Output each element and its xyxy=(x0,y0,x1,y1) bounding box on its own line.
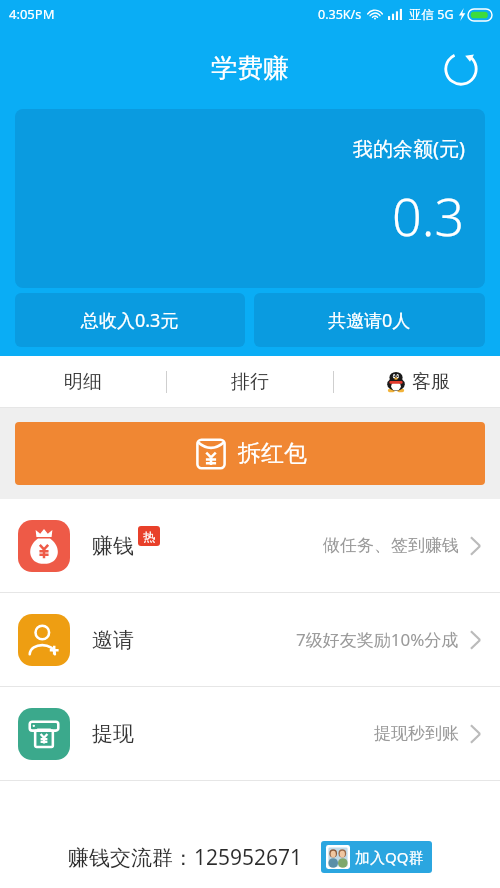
button[interactable]: 客服 xyxy=(334,356,500,408)
button[interactable]: 明细 xyxy=(0,356,166,408)
button[interactable]: 共邀请0人 xyxy=(254,293,485,347)
staticText: 邀请 xyxy=(92,627,134,653)
staticText: 排行 xyxy=(231,370,269,394)
staticText: 亚信 5G xyxy=(409,6,454,23)
staticText: 我的余额(元) xyxy=(353,135,465,162)
staticText: 赚钱交流群：125952671 xyxy=(68,843,303,872)
staticText: 做任务、签到赚钱 xyxy=(323,535,459,556)
staticText: 提现秒到账 xyxy=(374,723,459,744)
staticText: 客服 xyxy=(412,370,450,394)
button[interactable]: Refresh xyxy=(438,46,484,92)
staticText: 0.3 xyxy=(392,180,465,251)
staticText: 热 xyxy=(143,529,155,544)
staticText: 共邀请0人 xyxy=(328,308,411,333)
button[interactable]: 总收入0.3元 xyxy=(15,293,245,347)
staticText: 赚钱 xyxy=(92,533,134,559)
staticText: 总收入0.3元 xyxy=(81,308,179,333)
staticText: 0.35K/s xyxy=(318,6,362,23)
button[interactable]: 加入QQ群 xyxy=(321,841,432,873)
staticText: 学费赚 xyxy=(211,52,289,85)
button[interactable]: 邀请 xyxy=(0,593,500,686)
staticText: 明细 xyxy=(64,370,102,394)
button[interactable]: 我的余额(元) xyxy=(15,109,485,288)
staticText: 提现 xyxy=(92,721,134,747)
button[interactable]: 提现 xyxy=(0,687,500,780)
button[interactable]: 赚钱 xyxy=(0,499,500,592)
staticText: 拆红包 xyxy=(238,439,307,468)
staticText: 7级好友奖励10%分成 xyxy=(296,628,459,651)
staticText: 4:05PM xyxy=(9,5,55,23)
staticText: 加入QQ群 xyxy=(355,847,424,867)
button[interactable]: 排行 xyxy=(167,356,333,408)
button[interactable]: 拆红包 xyxy=(15,422,485,485)
